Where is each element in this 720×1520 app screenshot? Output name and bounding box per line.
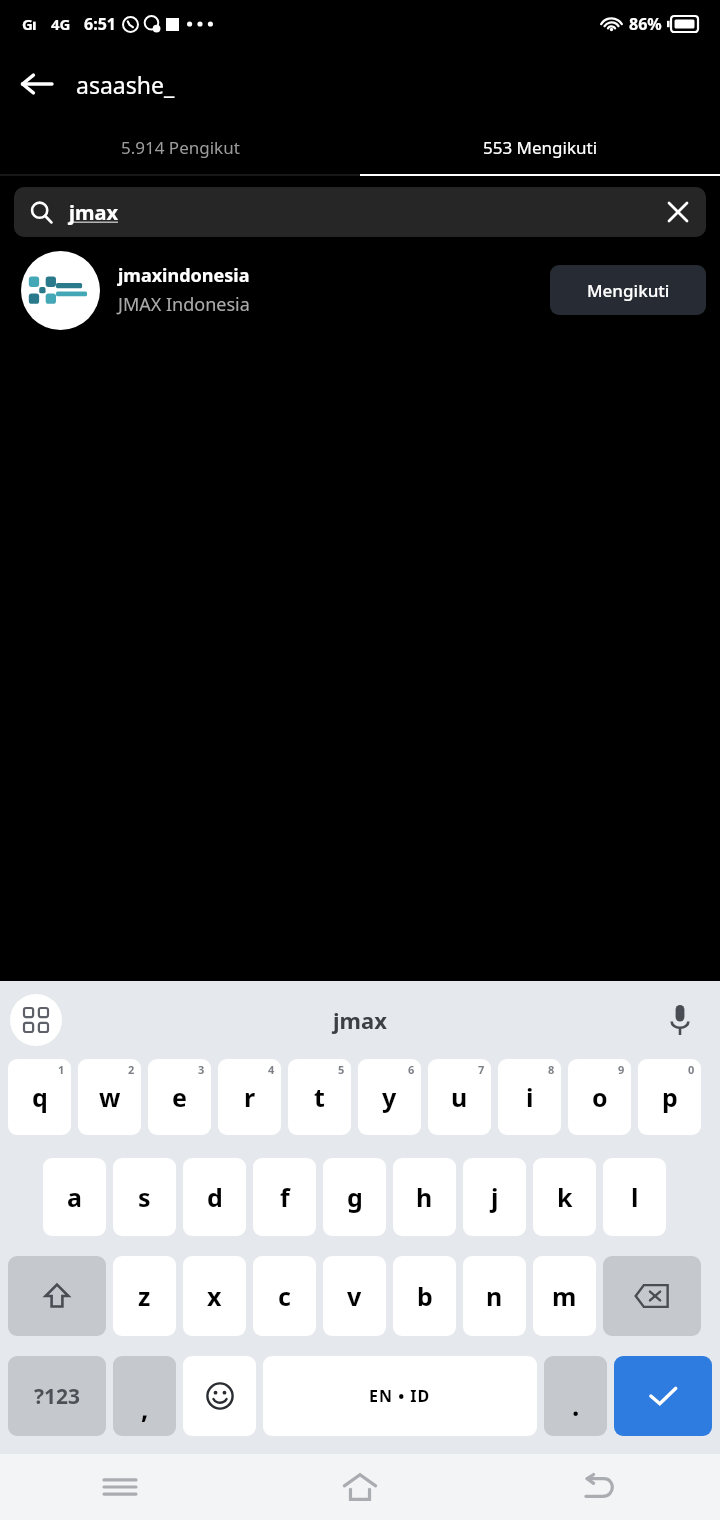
staticText: 1 — [58, 1062, 65, 1077]
button[interactable]: 553 Mengikuti — [360, 120, 720, 174]
button[interactable]: e — [148, 1059, 211, 1135]
button[interactable]: a — [43, 1158, 106, 1236]
button[interactable]: q — [8, 1059, 71, 1135]
staticText: 6 — [408, 1062, 415, 1077]
staticText: 2 — [128, 1062, 135, 1077]
button[interactable]: k — [533, 1158, 596, 1236]
staticText: 7 — [478, 1062, 485, 1077]
button[interactable]: r — [218, 1059, 281, 1135]
button[interactable]: . — [544, 1356, 607, 1436]
staticText: 0 — [688, 1062, 695, 1077]
button[interactable]: Backspace — [603, 1256, 701, 1336]
button[interactable]: w — [78, 1059, 141, 1135]
staticText: i — [526, 1080, 534, 1114]
button[interactable]: h — [393, 1158, 456, 1236]
staticText: n — [486, 1279, 503, 1313]
staticText: Mengikuti — [587, 279, 670, 302]
button[interactable]: o — [568, 1059, 631, 1135]
button[interactable]: l — [603, 1158, 666, 1236]
staticText: d — [207, 1180, 223, 1214]
button[interactable]: Enter — [614, 1356, 712, 1436]
button[interactable]: jmaxindonesia — [0, 248, 720, 332]
button[interactable]: j — [463, 1158, 526, 1236]
staticText: q — [32, 1080, 48, 1114]
staticText: . — [572, 1388, 580, 1423]
staticText: s — [138, 1180, 151, 1214]
button[interactable]: ?123 — [8, 1356, 106, 1436]
button[interactable]: EN • ID — [263, 1356, 537, 1436]
button[interactable]: Keyboard menu — [10, 994, 62, 1046]
button[interactable]: s — [113, 1158, 176, 1236]
staticText: 86% — [629, 13, 662, 35]
button[interactable]: b — [393, 1256, 456, 1336]
staticText: 5 — [338, 1062, 345, 1077]
staticText: a — [67, 1180, 82, 1214]
button[interactable]: Shift — [8, 1256, 106, 1336]
button[interactable]: jmax — [14, 187, 706, 237]
button[interactable]: p — [638, 1059, 701, 1135]
button[interactable]: z — [113, 1256, 176, 1336]
button[interactable]: g — [323, 1158, 386, 1236]
staticText: JMAX Indonesia — [118, 292, 250, 317]
button[interactable]: Voice input — [656, 996, 704, 1044]
button[interactable]: y — [358, 1059, 421, 1135]
staticText: h — [416, 1180, 433, 1214]
staticText: G — [22, 14, 33, 34]
staticText: 3 — [198, 1062, 205, 1077]
button[interactable]: i — [498, 1059, 561, 1135]
button[interactable]: u — [428, 1059, 491, 1135]
button[interactable]: Emoji — [183, 1356, 256, 1436]
button[interactable]: c — [253, 1256, 316, 1336]
staticText: 9 — [618, 1062, 625, 1077]
staticText: 4G — [51, 14, 71, 34]
staticText: w — [99, 1080, 121, 1114]
staticText: t — [314, 1080, 325, 1114]
button[interactable]: 5.914 Pengikut — [0, 120, 360, 174]
button[interactable]: m — [533, 1256, 596, 1336]
staticText: r — [244, 1080, 256, 1114]
button[interactable]: f — [253, 1158, 316, 1236]
staticText: 5.914 Pengikut — [121, 136, 240, 159]
staticText: y — [382, 1080, 397, 1114]
staticText: g — [347, 1180, 363, 1214]
staticText: e — [172, 1080, 187, 1114]
staticText: 4 — [268, 1062, 275, 1077]
staticText: f — [280, 1180, 290, 1214]
staticText: jmaxindonesia — [118, 263, 250, 288]
button[interactable]: x — [183, 1256, 246, 1336]
staticText: asaashe_ — [76, 69, 175, 100]
button[interactable]: Mengikuti — [550, 265, 706, 315]
button[interactable]: Clear search — [654, 188, 702, 236]
staticText: b — [417, 1279, 433, 1313]
staticText: l — [631, 1180, 639, 1214]
staticText: 553 Mengikuti — [483, 136, 598, 159]
staticText: u — [451, 1080, 468, 1114]
staticText: jmax — [69, 199, 118, 226]
button[interactable]: Back — [480, 1454, 720, 1520]
button[interactable]: , — [113, 1356, 176, 1436]
staticText: 6:51 — [84, 13, 116, 35]
staticText: z — [138, 1279, 151, 1313]
staticText: p — [662, 1080, 678, 1114]
staticText: o — [592, 1080, 608, 1114]
button[interactable]: v — [323, 1256, 386, 1336]
button[interactable]: Back — [8, 56, 64, 112]
button[interactable]: d — [183, 1158, 246, 1236]
staticText: m — [552, 1279, 577, 1313]
button[interactable]: t — [288, 1059, 351, 1135]
staticText: x — [207, 1279, 222, 1313]
staticText: k — [557, 1180, 573, 1214]
button[interactable]: n — [463, 1256, 526, 1336]
button[interactable]: Home — [240, 1454, 480, 1520]
button[interactable]: Recents — [0, 1454, 240, 1520]
staticText: jmax — [333, 1005, 387, 1035]
staticText: , — [141, 1391, 149, 1426]
staticText: j — [491, 1180, 499, 1214]
staticText: 8 — [548, 1062, 555, 1077]
staticText: ?123 — [34, 1382, 81, 1411]
staticText: v — [347, 1279, 362, 1313]
staticText: c — [278, 1279, 291, 1313]
staticText: EN • ID — [369, 1385, 431, 1407]
